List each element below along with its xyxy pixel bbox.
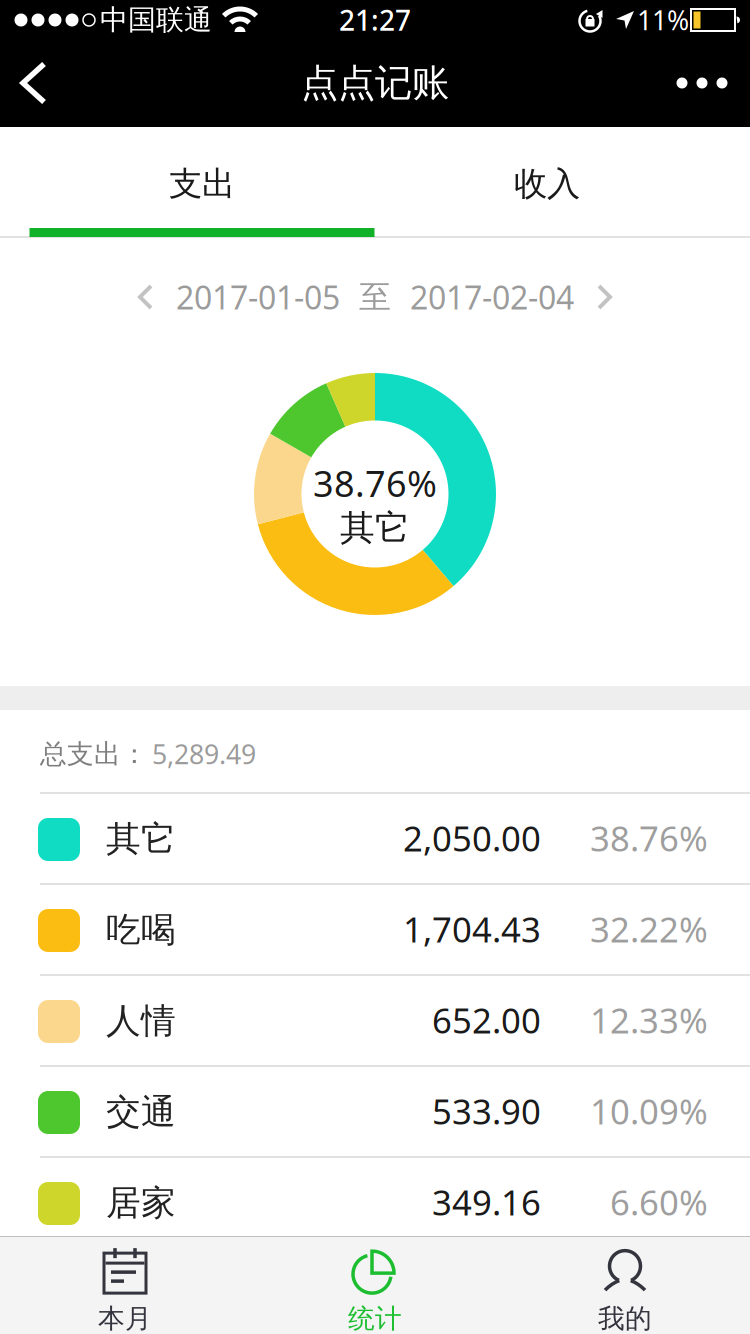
button[interactable]: 其它 — [0, 794, 750, 885]
staticText: 居家 — [106, 1182, 176, 1224]
staticText: 其它 — [106, 818, 176, 860]
staticText: 2017-02-04 — [410, 276, 574, 318]
button[interactable]: Back — [14, 59, 54, 107]
staticText: 交通 — [106, 1091, 176, 1133]
staticText: 本月 — [98, 1302, 152, 1334]
button[interactable]: 收入 — [374, 136, 719, 232]
staticText: 吃喝 — [106, 909, 176, 951]
button[interactable]: Next period — [574, 282, 616, 312]
staticText: 11% — [637, 2, 689, 38]
staticText: 总支出： — [40, 738, 148, 770]
button[interactable]: 我的 — [500, 1243, 750, 1334]
staticText: 收入 — [514, 163, 580, 204]
button[interactable]: 统计 — [250, 1243, 500, 1334]
button[interactable]: 支出 — [29, 136, 374, 232]
staticText: 支出 — [169, 163, 235, 204]
staticText: 2,050.00 — [403, 815, 541, 861]
staticText: 32.22% — [590, 906, 708, 952]
staticText: 38.76% — [313, 459, 437, 507]
staticText: 人情 — [106, 1000, 176, 1042]
button[interactable]: Previous period — [134, 282, 157, 312]
button[interactable]: 居家 — [0, 1158, 750, 1249]
staticText: 38.76% — [590, 815, 708, 861]
button[interactable]: 交通 — [0, 1067, 750, 1158]
staticText: 1,704.43 — [403, 906, 541, 952]
staticText: 12.33% — [590, 997, 708, 1043]
staticText: 5,289.49 — [152, 736, 256, 772]
button[interactable]: 本月 — [0, 1243, 250, 1334]
staticText: 我的 — [598, 1302, 652, 1334]
staticText: 统计 — [348, 1302, 402, 1334]
button[interactable]: 吃喝 — [0, 885, 750, 976]
button[interactable]: 人情 — [0, 976, 750, 1067]
staticText: 10.09% — [590, 1088, 708, 1134]
staticText: 533.90 — [432, 1088, 541, 1134]
staticText: 21:27 — [339, 1, 411, 39]
staticText: 6.60% — [610, 1179, 708, 1225]
staticText: 2017-01-05 — [176, 276, 340, 318]
button[interactable]: More — [668, 57, 735, 108]
staticText: 中国联通 — [100, 3, 212, 37]
staticText: 至 — [359, 277, 391, 317]
staticText: 349.16 — [432, 1179, 541, 1225]
staticText: 其它 — [340, 507, 410, 549]
staticText: 652.00 — [432, 997, 541, 1043]
staticText: 点点记账 — [301, 60, 449, 106]
